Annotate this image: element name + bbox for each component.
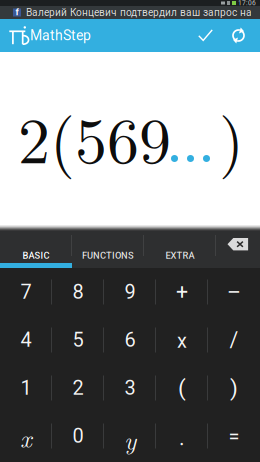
button[interactable]: . (156, 412, 208, 460)
button[interactable]: 7 (0, 268, 52, 316)
button[interactable]: 6 (104, 316, 156, 364)
button[interactable]: 8 (52, 268, 104, 316)
button[interactable]: ) (208, 364, 260, 412)
staticText: – (227, 280, 241, 305)
button[interactable]: Accept (189, 19, 222, 52)
button[interactable]: – (208, 268, 260, 316)
button[interactable]: 1 (0, 364, 52, 412)
button[interactable]: 9 (104, 268, 156, 316)
button[interactable]: 5 (52, 316, 104, 364)
staticText: 3 (124, 376, 135, 400)
button[interactable]: BASIC (0, 231, 72, 268)
staticText: 1 (20, 376, 31, 400)
staticText: = (228, 425, 239, 448)
staticText: 6 (124, 328, 135, 352)
staticText: 2(569 (18, 91, 171, 182)
staticText: Валерий Концевич подтвердил ваш запрос н… (26, 7, 252, 18)
button[interactable]: x (0, 412, 52, 460)
staticText: 2 (72, 376, 83, 400)
staticText: 0 (72, 424, 83, 448)
button[interactable]: ( (156, 364, 208, 412)
staticText: 7 (20, 280, 31, 304)
staticText: x (177, 329, 187, 353)
staticText: x (20, 419, 32, 455)
button[interactable]: + (156, 268, 208, 316)
button[interactable]: 3 (104, 364, 156, 412)
staticText: ) (219, 91, 244, 182)
button[interactable]: = (208, 412, 260, 460)
staticText: f (15, 7, 18, 17)
button[interactable]: 0 (52, 412, 104, 460)
staticText: 17:06 (238, 0, 256, 7)
button[interactable]: 4 (0, 316, 52, 364)
button[interactable]: / (208, 316, 260, 364)
button[interactable]: x (156, 316, 208, 364)
staticText: 9 (124, 280, 135, 304)
staticText: 4 (20, 328, 31, 352)
staticText: y (124, 421, 136, 457)
staticText: 5 (72, 328, 83, 352)
button[interactable]: Refresh (222, 19, 255, 52)
staticText: + (176, 280, 188, 305)
staticText: FUNCTIONS (82, 250, 134, 261)
staticText: / (229, 327, 238, 352)
button[interactable]: Delete (216, 231, 260, 268)
staticText: ) (230, 375, 238, 401)
staticText: . (179, 425, 185, 450)
button[interactable]: FUNCTIONS (72, 231, 144, 268)
staticText: EXTRA (165, 250, 194, 261)
staticText: 8 (72, 280, 83, 304)
button[interactable]: EXTRA (144, 231, 216, 268)
staticText: BASIC (22, 250, 49, 261)
button[interactable]: y (104, 412, 156, 460)
button[interactable]: 2 (52, 364, 104, 412)
staticText: ( (178, 375, 186, 401)
staticText: MathStep (30, 27, 91, 44)
